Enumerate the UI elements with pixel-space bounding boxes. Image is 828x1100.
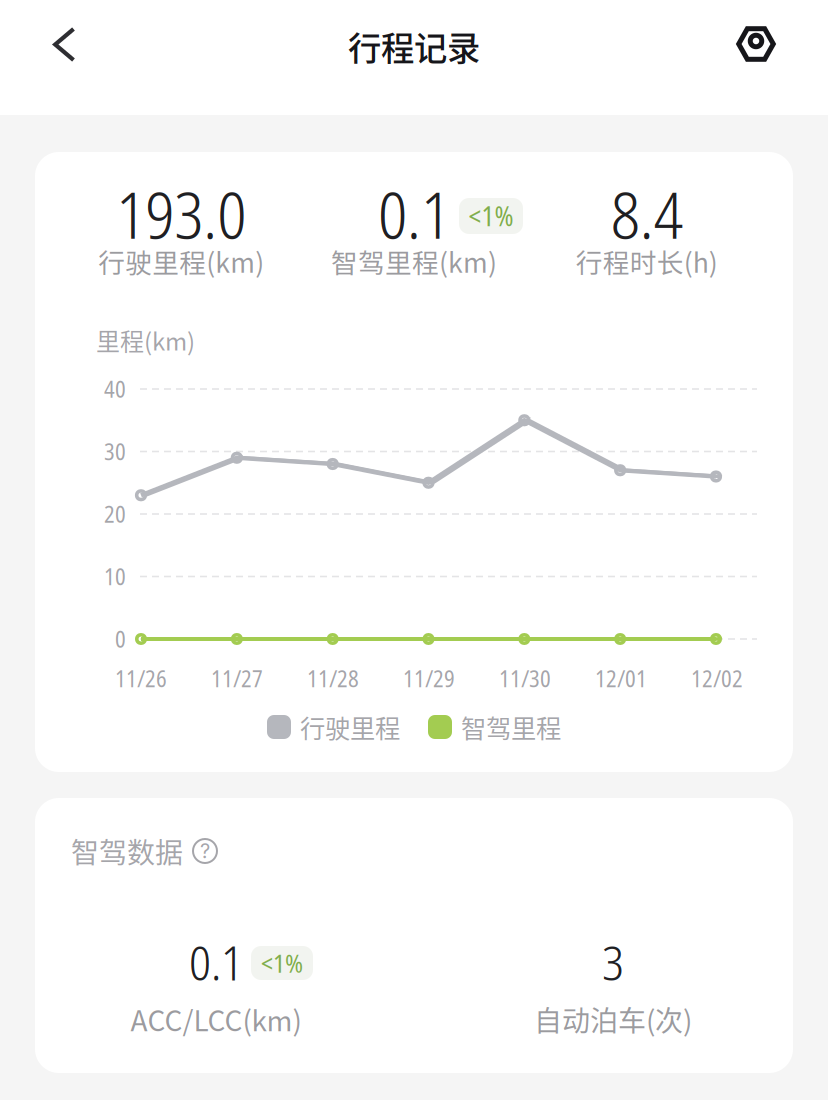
staticText: 11/29 <box>403 663 455 694</box>
staticText: 行驶里程(km) <box>98 242 264 280</box>
staticText: 193.0 <box>116 170 246 258</box>
staticText: 11/26 <box>115 663 167 694</box>
staticText: 8.4 <box>611 170 683 258</box>
staticText: 0.1 <box>189 929 243 995</box>
staticText: ? <box>200 839 210 863</box>
staticText: 11/30 <box>499 663 551 694</box>
staticText: 12/02 <box>691 663 743 694</box>
staticText: 10 <box>104 561 126 592</box>
staticText: 12/01 <box>595 663 647 694</box>
staticText: 行程记录 <box>348 22 480 70</box>
staticText: ACC/LCC(km) <box>130 999 301 1039</box>
staticText: 20 <box>104 499 126 529</box>
staticText: 行驶里程 <box>300 709 400 745</box>
staticText: <1% <box>468 198 513 234</box>
staticText: 30 <box>104 436 126 467</box>
staticText: 行程时长(h) <box>576 242 718 280</box>
staticText: 0.1 <box>378 170 450 258</box>
staticText: 11/27 <box>211 663 263 694</box>
staticText: 40 <box>104 374 126 404</box>
staticText: 0 <box>115 624 126 654</box>
staticText: 智驾里程 <box>461 709 561 745</box>
staticText: 11/28 <box>307 663 359 694</box>
staticText: 智驾数据 <box>71 831 183 871</box>
button[interactable]: Settings <box>700 0 828 89</box>
staticText: 3 <box>602 929 624 995</box>
staticText: 智驾里程(km) <box>331 242 497 280</box>
staticText: <1% <box>261 946 303 980</box>
staticText: 自动泊车(次) <box>534 999 692 1039</box>
staticText: 里程(km) <box>96 323 195 357</box>
button[interactable]: Back <box>0 0 128 89</box>
